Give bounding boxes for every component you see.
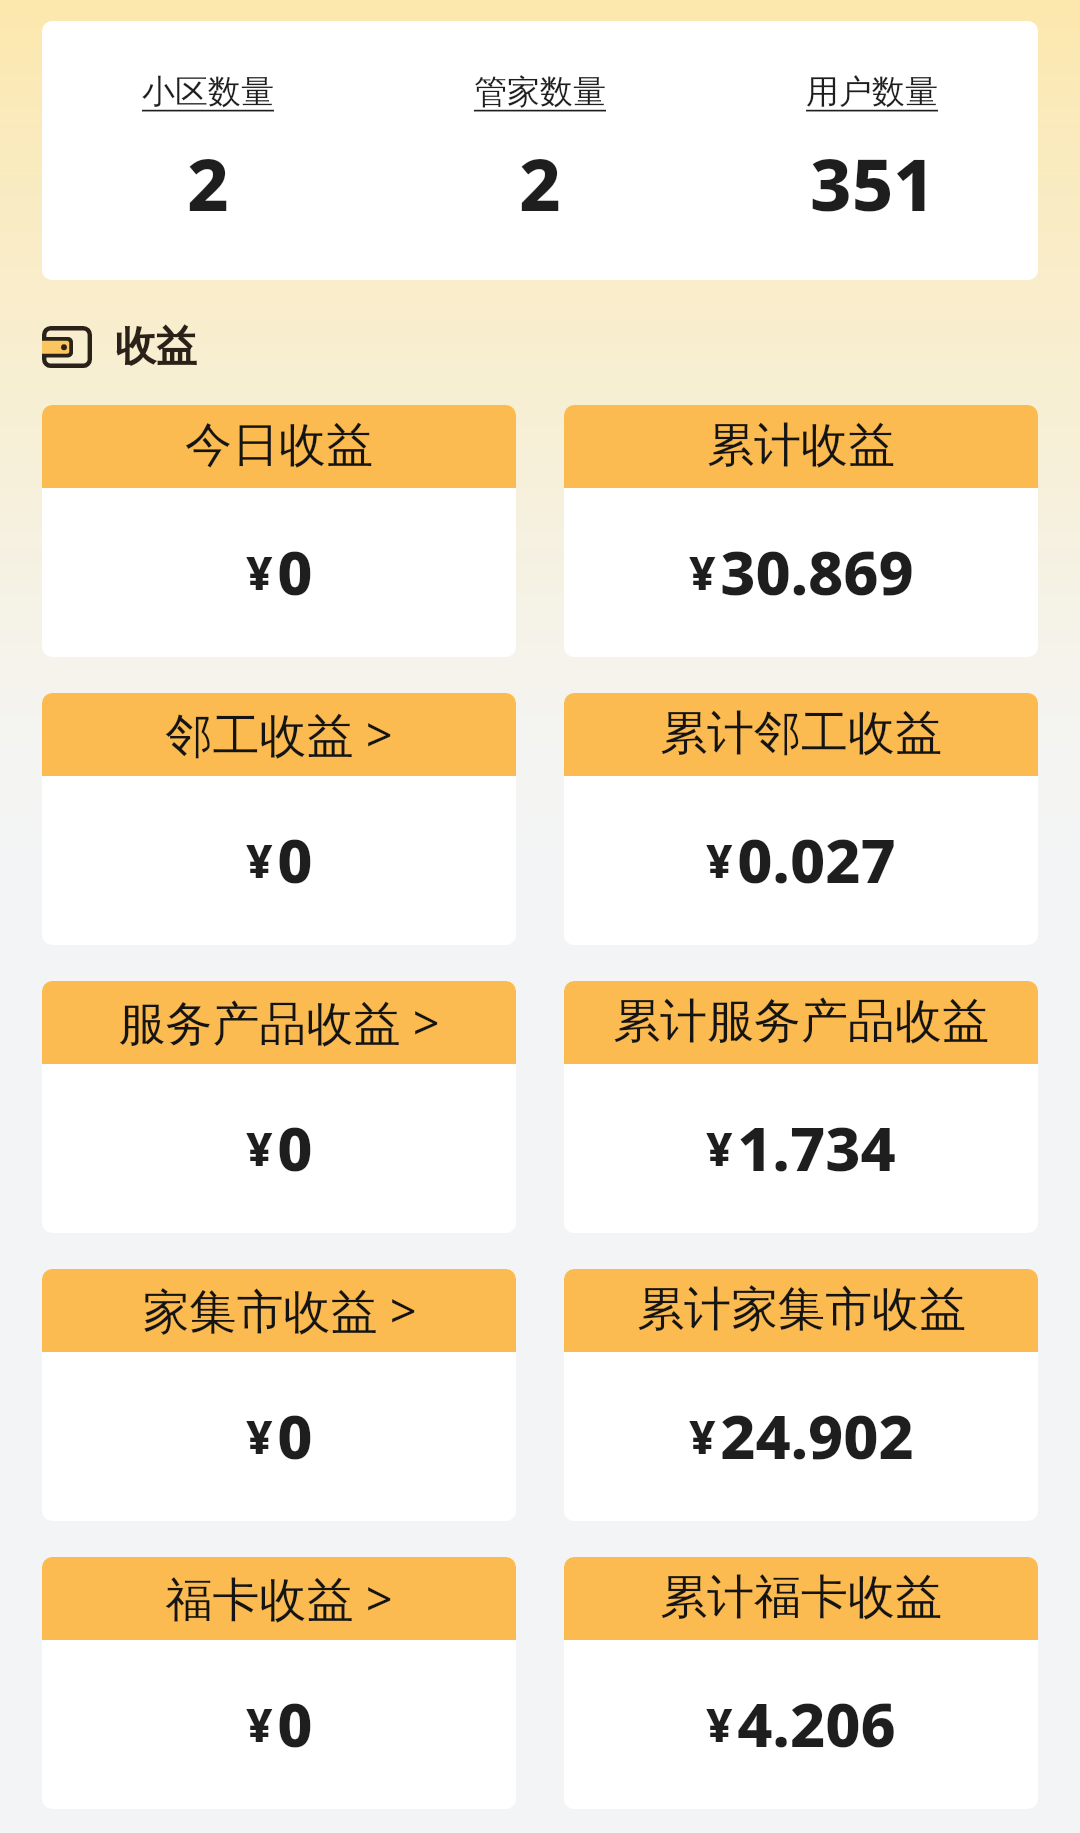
button[interactable]: 今日收益 (42, 405, 516, 657)
button[interactable]: 累计邻工收益 (564, 693, 1038, 945)
staticText: 累计邻工收益 (660, 704, 942, 763)
staticText: 累计服务产品收益 (613, 992, 989, 1051)
staticText: 0.027 (737, 818, 896, 901)
staticText: ¥ (246, 541, 273, 604)
staticText: ¥ (706, 1693, 733, 1756)
button[interactable]: 服务产品收益 > (42, 981, 516, 1233)
button[interactable]: 累计收益 (564, 405, 1038, 657)
staticText: 累计家集市收益 (637, 1280, 966, 1339)
button[interactable]: 管家数量 (374, 21, 706, 280)
staticText: ¥ (246, 1117, 273, 1180)
button[interactable]: 用户数量 (706, 21, 1038, 280)
staticText: 0 (277, 1394, 313, 1477)
staticText: ¥ (689, 1405, 716, 1468)
staticText: 收益 (115, 321, 197, 373)
staticText: 0 (277, 530, 313, 613)
button[interactable]: 小区数量 (42, 21, 1038, 280)
staticText: 0 (277, 1682, 313, 1765)
staticText: ¥ (706, 829, 733, 892)
button[interactable]: 邻工收益 > (42, 693, 516, 945)
staticText: ¥ (246, 1405, 273, 1468)
button[interactable]: 小区数量 (42, 21, 374, 280)
other: 收益 Earnings (42, 326, 92, 368)
staticText: 1.734 (737, 1106, 896, 1189)
button[interactable]: 累计福卡收益 (564, 1557, 1038, 1809)
staticText: 服务产品收益 > (118, 990, 440, 1054)
button[interactable]: 累计服务产品收益 (564, 981, 1038, 1233)
button[interactable]: 收益 Earnings (42, 321, 197, 373)
button[interactable]: 累计家集市收益 (564, 1269, 1038, 1521)
staticText: 家集市收益 > (142, 1278, 417, 1342)
staticText: 小区数量 (142, 71, 274, 113)
staticText: 24.902 (720, 1394, 914, 1477)
staticText: 累计收益 (707, 416, 895, 475)
staticText: 福卡收益 > (165, 1566, 393, 1630)
staticText: ¥ (246, 829, 273, 892)
staticText: 用户数量 (806, 71, 938, 113)
staticText: 351 (810, 134, 935, 232)
staticText: ¥ (689, 541, 716, 604)
staticText: 0 (277, 1106, 313, 1189)
staticText: 今日收益 (185, 416, 373, 475)
button[interactable]: 福卡收益 > (42, 1557, 516, 1809)
staticText: 管家数量 (474, 71, 606, 113)
staticText: 4.206 (737, 1682, 896, 1765)
staticText: ¥ (706, 1117, 733, 1180)
staticText: 2 (187, 134, 229, 232)
button[interactable]: 家集市收益 > (42, 1269, 516, 1521)
staticText: ¥ (246, 1693, 273, 1756)
staticText: 0 (277, 818, 313, 901)
staticText: 30.869 (720, 530, 914, 613)
staticText: 邻工收益 > (165, 702, 393, 766)
staticText: 2 (519, 134, 561, 232)
staticText: 累计福卡收益 (660, 1568, 942, 1627)
